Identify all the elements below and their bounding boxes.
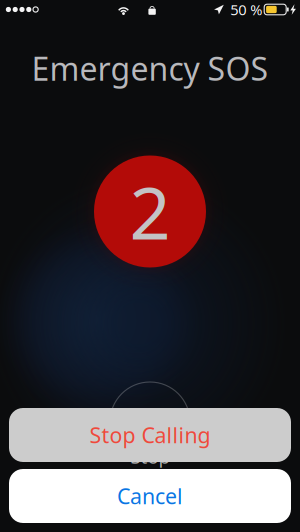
staticText: 50 %	[230, 0, 262, 19]
button[interactable]: Stop Calling	[9, 408, 291, 462]
staticText: Emergency SOS	[31, 47, 268, 89]
staticText: Stop Calling	[89, 421, 210, 449]
staticText: Cancel	[117, 482, 183, 510]
staticText: Stop	[130, 444, 169, 469]
button[interactable]: Cancel	[9, 469, 291, 523]
staticText: 2	[129, 164, 170, 259]
